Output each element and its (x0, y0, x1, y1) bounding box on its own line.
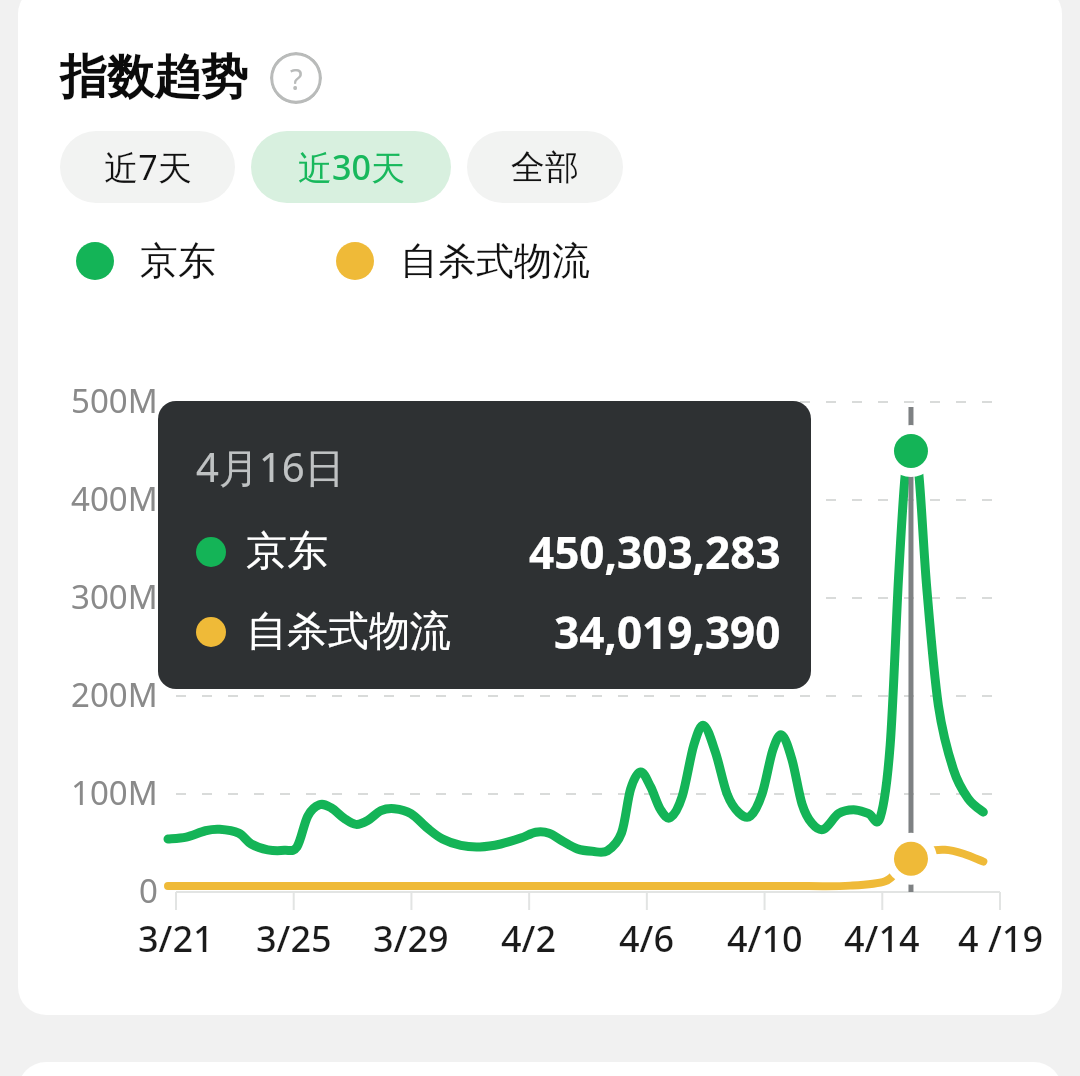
staticText: 100M (71, 770, 158, 815)
staticText: 3/21 (138, 914, 214, 963)
staticText: 450,303,283 (529, 522, 781, 582)
button[interactable]: 近30天 (251, 131, 451, 203)
staticText: 34,019,390 (554, 602, 781, 662)
button[interactable]: 4月16日 (158, 401, 811, 689)
button[interactable]: 近7天 (60, 131, 235, 203)
staticText: 自杀式物流 (400, 237, 590, 285)
button[interactable]: 京东 (76, 237, 216, 285)
button[interactable]: 自杀式物流 (336, 237, 590, 285)
staticText: 全部 (511, 146, 579, 189)
staticText: 4/2 (501, 914, 557, 963)
staticText: 指数趋势 (60, 48, 248, 107)
staticText: 4月16日 (196, 439, 345, 494)
staticText: ? (290, 59, 303, 98)
staticText: 3/29 (373, 914, 449, 963)
staticText: 0 (139, 868, 158, 913)
staticText: 200M (71, 672, 158, 717)
staticText: 3/25 (256, 914, 332, 963)
staticText: 京东 (246, 526, 328, 578)
staticText: 近30天 (298, 144, 405, 190)
button[interactable]: 全部 (467, 131, 623, 203)
staticText: 京东 (140, 237, 216, 285)
staticText: 4/10 (727, 914, 803, 963)
button[interactable]: 帮助 (270, 52, 322, 104)
staticText: 4 /19 (958, 914, 1043, 963)
staticText: 4/14 (844, 914, 920, 963)
staticText: 300M (71, 574, 158, 619)
staticText: 400M (71, 476, 158, 521)
staticText: 4/6 (619, 914, 675, 963)
staticText: 500M (71, 378, 158, 423)
staticText: 自杀式物流 (246, 606, 451, 658)
staticText: 近7天 (104, 144, 192, 190)
